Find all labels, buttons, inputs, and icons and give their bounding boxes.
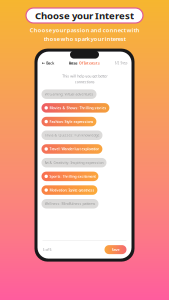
button[interactable]: Art & Creativity: Inspiring expression <box>41 158 106 167</box>
staticText: Back <box>46 61 54 65</box>
button[interactable]: Motivation: Ignite greatness <box>41 185 97 195</box>
staticText: Fashion: Style expressions <box>49 119 93 124</box>
button[interactable]: Sports: Thrilling excitement <box>41 172 98 181</box>
button[interactable]: Trivia & Quizzes: Fun knowledge <box>41 130 102 140</box>
button[interactable]: Travel: Wanderlust exploration <box>41 144 102 154</box>
staticText: Movies & Shows: Thrilling stories <box>49 105 106 110</box>
staticText: Motivation: Ignite greatness <box>49 188 94 192</box>
staticText: 5 of 5 <box>42 247 51 252</box>
button[interactable]: ← <box>41 61 54 66</box>
button[interactable]: Fashion: Style expressions <box>41 117 96 126</box>
staticText: This will help you get better connection… <box>62 74 107 84</box>
staticText: Of Interests <box>79 61 100 65</box>
staticText: Art & Creativity: Inspiring expression <box>44 160 103 165</box>
staticText: 3/2 Step <box>114 61 127 65</box>
staticText: Trivia & Quizzes: Fun knowledge <box>44 133 99 138</box>
staticText: Sports: Thrilling excitement <box>49 174 95 179</box>
staticText: Save <box>111 247 119 252</box>
button[interactable]: VR Gaming: Virtual adventures <box>41 89 96 99</box>
staticText: Areas <box>69 61 78 65</box>
button[interactable]: Movies & Shows: Thrilling stories <box>41 103 109 113</box>
staticText: VR Gaming: Virtual adventures <box>44 92 93 96</box>
staticText: Choose your Interest <box>35 9 134 22</box>
staticText: ← <box>41 61 45 66</box>
staticText: Wellness: Mindfulness patterns <box>44 201 95 206</box>
button[interactable]: Save <box>104 245 126 254</box>
staticText: Travel: Wanderlust exploration <box>49 147 99 151</box>
button[interactable]: Wellness: Mindfulness patterns <box>41 199 98 208</box>
staticText: Choose your passion and connect with tho… <box>29 26 139 43</box>
